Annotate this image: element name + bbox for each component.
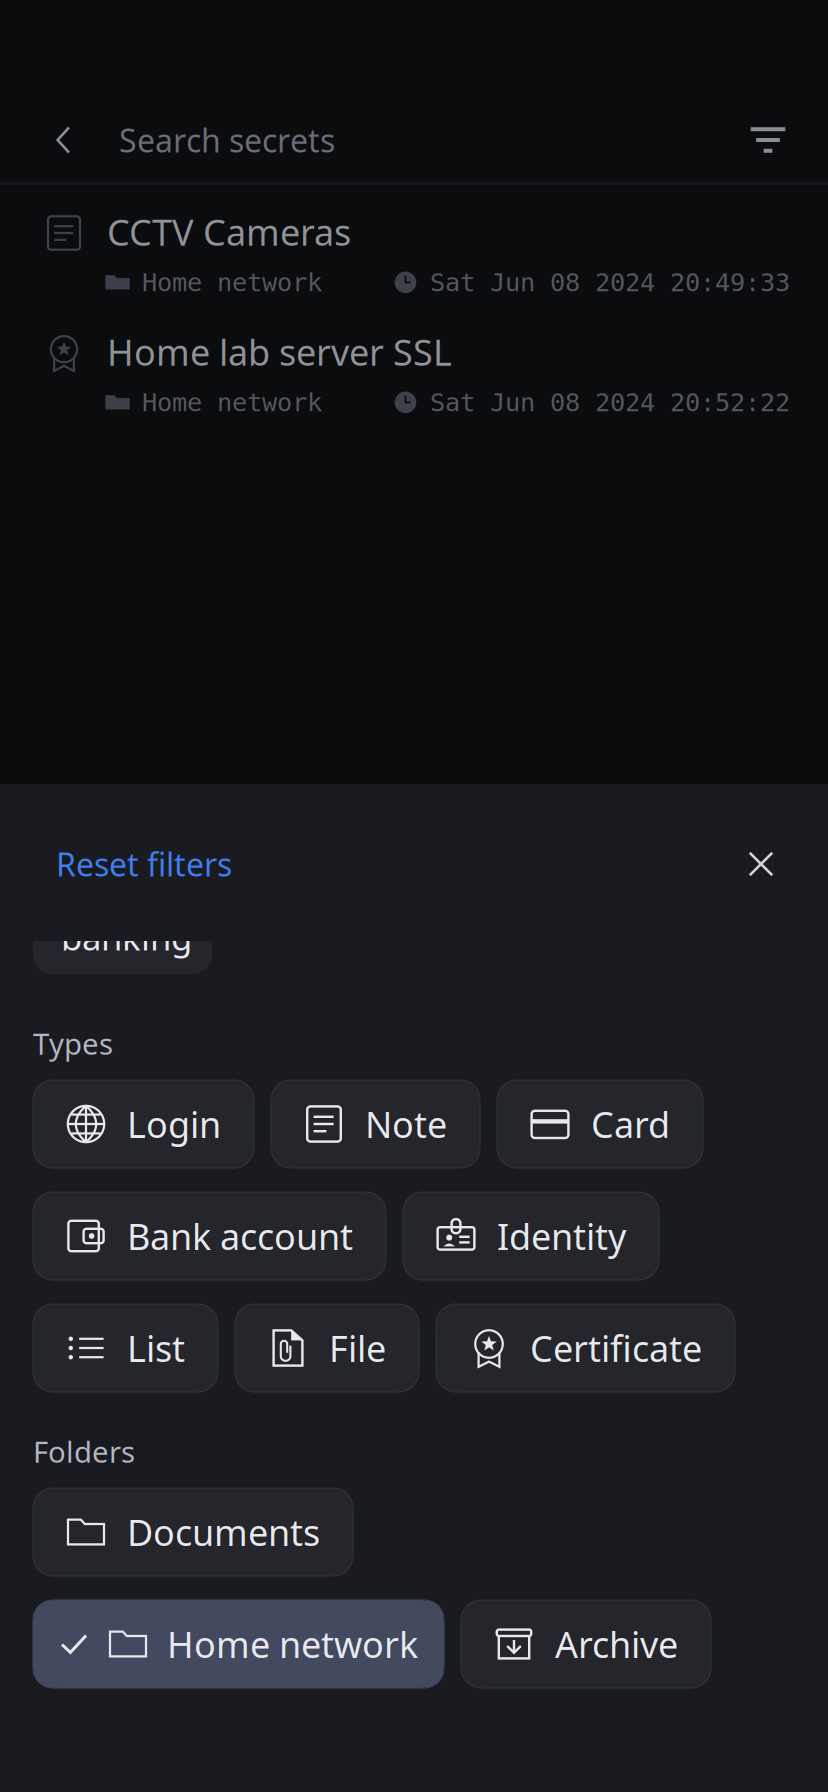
staticText: Sat Jun 08 2024 20:52:22 [430, 388, 790, 417]
staticText: Types [33, 1024, 113, 1063]
staticText: CCTV Cameras [107, 208, 351, 256]
button[interactable]: File [235, 1304, 419, 1392]
staticText: Search secrets [119, 119, 335, 161]
staticText: Home network [142, 268, 322, 297]
staticText: List [127, 1324, 185, 1372]
staticText: Home network [142, 388, 322, 417]
staticText: Reset filters [56, 843, 232, 885]
button[interactable]: Login [33, 1080, 254, 1168]
staticText: banking [61, 914, 192, 960]
staticText: Folders [33, 1432, 135, 1471]
button[interactable]: Note [271, 1080, 480, 1168]
staticText: Home lab server SSL [107, 328, 452, 376]
button[interactable]: Close [729, 832, 793, 896]
button[interactable]: Documents [33, 1488, 353, 1576]
button[interactable]: List [33, 1304, 218, 1392]
staticText: Bank account [127, 1212, 353, 1260]
button[interactable]: Filter [738, 108, 798, 172]
staticText: Archive [555, 1620, 678, 1668]
staticText: Card [591, 1100, 670, 1148]
button[interactable]: Home lab server SSL [0, 305, 828, 425]
button[interactable]: Certificate [436, 1304, 735, 1392]
staticText: Certificate [530, 1324, 702, 1372]
button[interactable]: banking [33, 886, 212, 974]
staticText: Sat Jun 08 2024 20:49:33 [430, 268, 790, 297]
button[interactable]: Bank account [33, 1192, 386, 1280]
staticText: File [329, 1324, 386, 1372]
staticText: Note [365, 1100, 447, 1148]
staticText: Identity [497, 1212, 626, 1260]
staticText: Documents [127, 1508, 320, 1556]
staticText: Login [127, 1100, 221, 1148]
button[interactable]: CCTV Cameras [0, 185, 828, 305]
button[interactable]: Identity [403, 1192, 659, 1280]
button[interactable]: Reset filters [0, 830, 254, 898]
button[interactable]: Home network [33, 1600, 444, 1688]
button[interactable]: Back [35, 108, 91, 172]
staticText: Home network [167, 1620, 418, 1668]
button[interactable]: Archive [461, 1600, 711, 1688]
button[interactable]: Card [497, 1080, 703, 1168]
